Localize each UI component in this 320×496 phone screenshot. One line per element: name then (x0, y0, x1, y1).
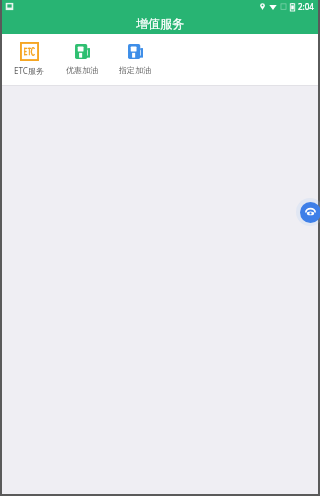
button[interactable]: ETC服务 (2, 39, 55, 78)
staticText: 增值服务 (136, 16, 184, 31)
staticText: 指定加油 (119, 65, 151, 75)
staticText: 优惠加油 (66, 65, 98, 75)
button[interactable]: Customer service (296, 198, 320, 226)
staticText: ETC服务 (14, 65, 44, 76)
staticText: 2:04 (298, 1, 314, 12)
button[interactable]: 优惠加油 (55, 39, 108, 77)
button[interactable]: 指定加油 (108, 39, 161, 77)
